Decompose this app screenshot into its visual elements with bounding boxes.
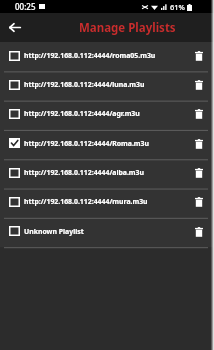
staticText: http://192.168.0.112:4444/Roma.m3u: [24, 139, 191, 148]
staticText: Unknown Playlist: [24, 227, 191, 236]
button[interactable]: http://192.168.0.112:4444/luna.m3u: [0, 71, 214, 100]
button[interactable]: Delete: [191, 106, 206, 121]
button[interactable]: Delete: [191, 77, 206, 92]
button[interactable]: http://192.168.0.112:4444/roma05.m3u: [0, 42, 214, 71]
button[interactable]: http://192.168.0.112:4444/Roma.m3u: [0, 129, 214, 159]
staticText: 61%: [170, 2, 185, 12]
staticText: 00:25: [15, 1, 36, 12]
button[interactable]: Unknown Playlist: [0, 217, 214, 247]
button[interactable]: http://192.168.0.112:4444/mura.m3u: [0, 188, 214, 217]
button[interactable]: Delete: [191, 136, 206, 151]
staticText: http://192.168.0.112:4444/agr.m3u: [24, 109, 191, 118]
button[interactable]: http://192.168.0.112:4444/alba.m3u: [0, 159, 214, 188]
staticText: http://192.168.0.112:4444/roma05.m3u: [24, 51, 191, 60]
staticText: Manage Playlists: [79, 20, 176, 36]
button[interactable]: Delete: [191, 224, 206, 239]
staticText: http://192.168.0.112:4444/luna.m3u: [24, 80, 191, 89]
staticText: http://192.168.0.112:4444/alba.m3u: [24, 168, 191, 177]
button[interactable]: Delete: [191, 48, 206, 63]
button[interactable]: Back: [0, 13, 30, 42]
staticText: http://192.168.0.112:4444/mura.m3u: [24, 197, 191, 206]
button[interactable]: Delete: [191, 165, 206, 180]
button[interactable]: http://192.168.0.112:4444/agr.m3u: [0, 100, 214, 129]
button[interactable]: Delete: [191, 194, 206, 209]
